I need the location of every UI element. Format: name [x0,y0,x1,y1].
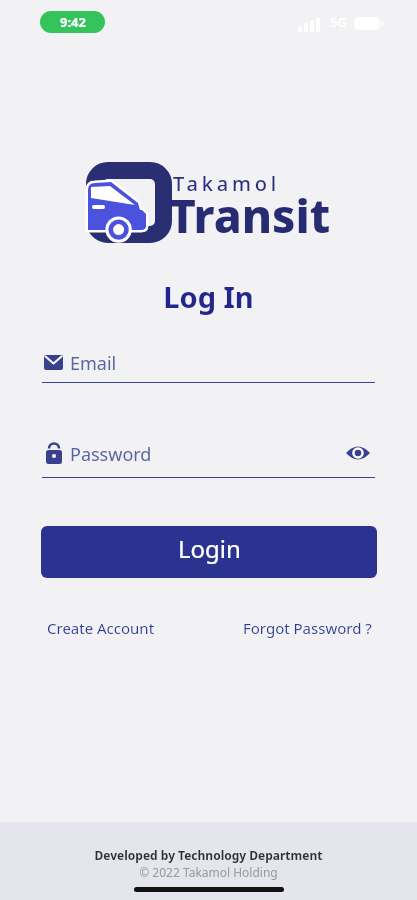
button[interactable]: Email [42,345,375,385]
staticText: Log In [0,277,417,316]
staticText: Takamol [173,170,280,197]
button[interactable]: Forgot Password ? [243,614,372,642]
staticText: 9:42 [60,13,86,31]
staticText: Create Account [47,618,155,638]
button[interactable]: Login [41,526,377,578]
staticText: Forgot Password ? [243,618,372,638]
staticText: Transit [169,184,331,247]
staticText: © 2022 Takamol Holding [0,864,417,880]
button[interactable] [346,444,370,462]
staticText: Developed by Technology Department [0,847,417,863]
staticText: Password [70,442,152,467]
button[interactable]: Password [42,436,375,476]
staticText: Email [70,351,117,376]
staticText: 5G [330,13,347,31]
button[interactable]: Create Account [47,614,155,642]
staticText: Login [178,532,241,565]
